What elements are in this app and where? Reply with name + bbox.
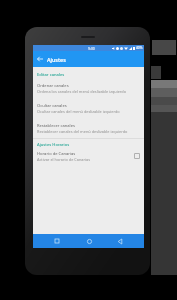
- button[interactable]: Restablecer canales: [33, 118, 144, 138]
- staticText: Ocultar canales: [37, 103, 67, 109]
- button[interactable]: Recent apps: [50, 234, 64, 248]
- staticText: Editar canales: [37, 72, 65, 78]
- button[interactable]: Ordenar canales: [33, 78, 144, 98]
- staticText: Ordenar canales: [37, 83, 69, 89]
- staticText: Ajustes Horarios: [37, 142, 70, 148]
- staticText: 40%: [136, 46, 143, 50]
- staticText: Ordena los canales del menú deslizable i…: [37, 89, 127, 94]
- button[interactable]: Back: [33, 52, 47, 66]
- staticText: Horario de Canarias: [37, 151, 76, 157]
- staticText: Ocultar canales del menú deslizable izqu…: [37, 109, 120, 114]
- staticText: Ajustes: [47, 56, 66, 63]
- button[interactable]: Home: [82, 234, 96, 248]
- staticText: Restablecer canales del menú deslizable …: [37, 129, 128, 134]
- staticText: 9:30: [88, 46, 95, 51]
- staticText: Activar el horario de Canarias: [37, 157, 91, 162]
- staticText: Restablecer canales: [37, 123, 75, 129]
- button[interactable]: Horario de Canarias: [33, 146, 144, 166]
- button[interactable]: Ocultar canales: [33, 98, 144, 118]
- button[interactable]: Back: [113, 234, 127, 248]
